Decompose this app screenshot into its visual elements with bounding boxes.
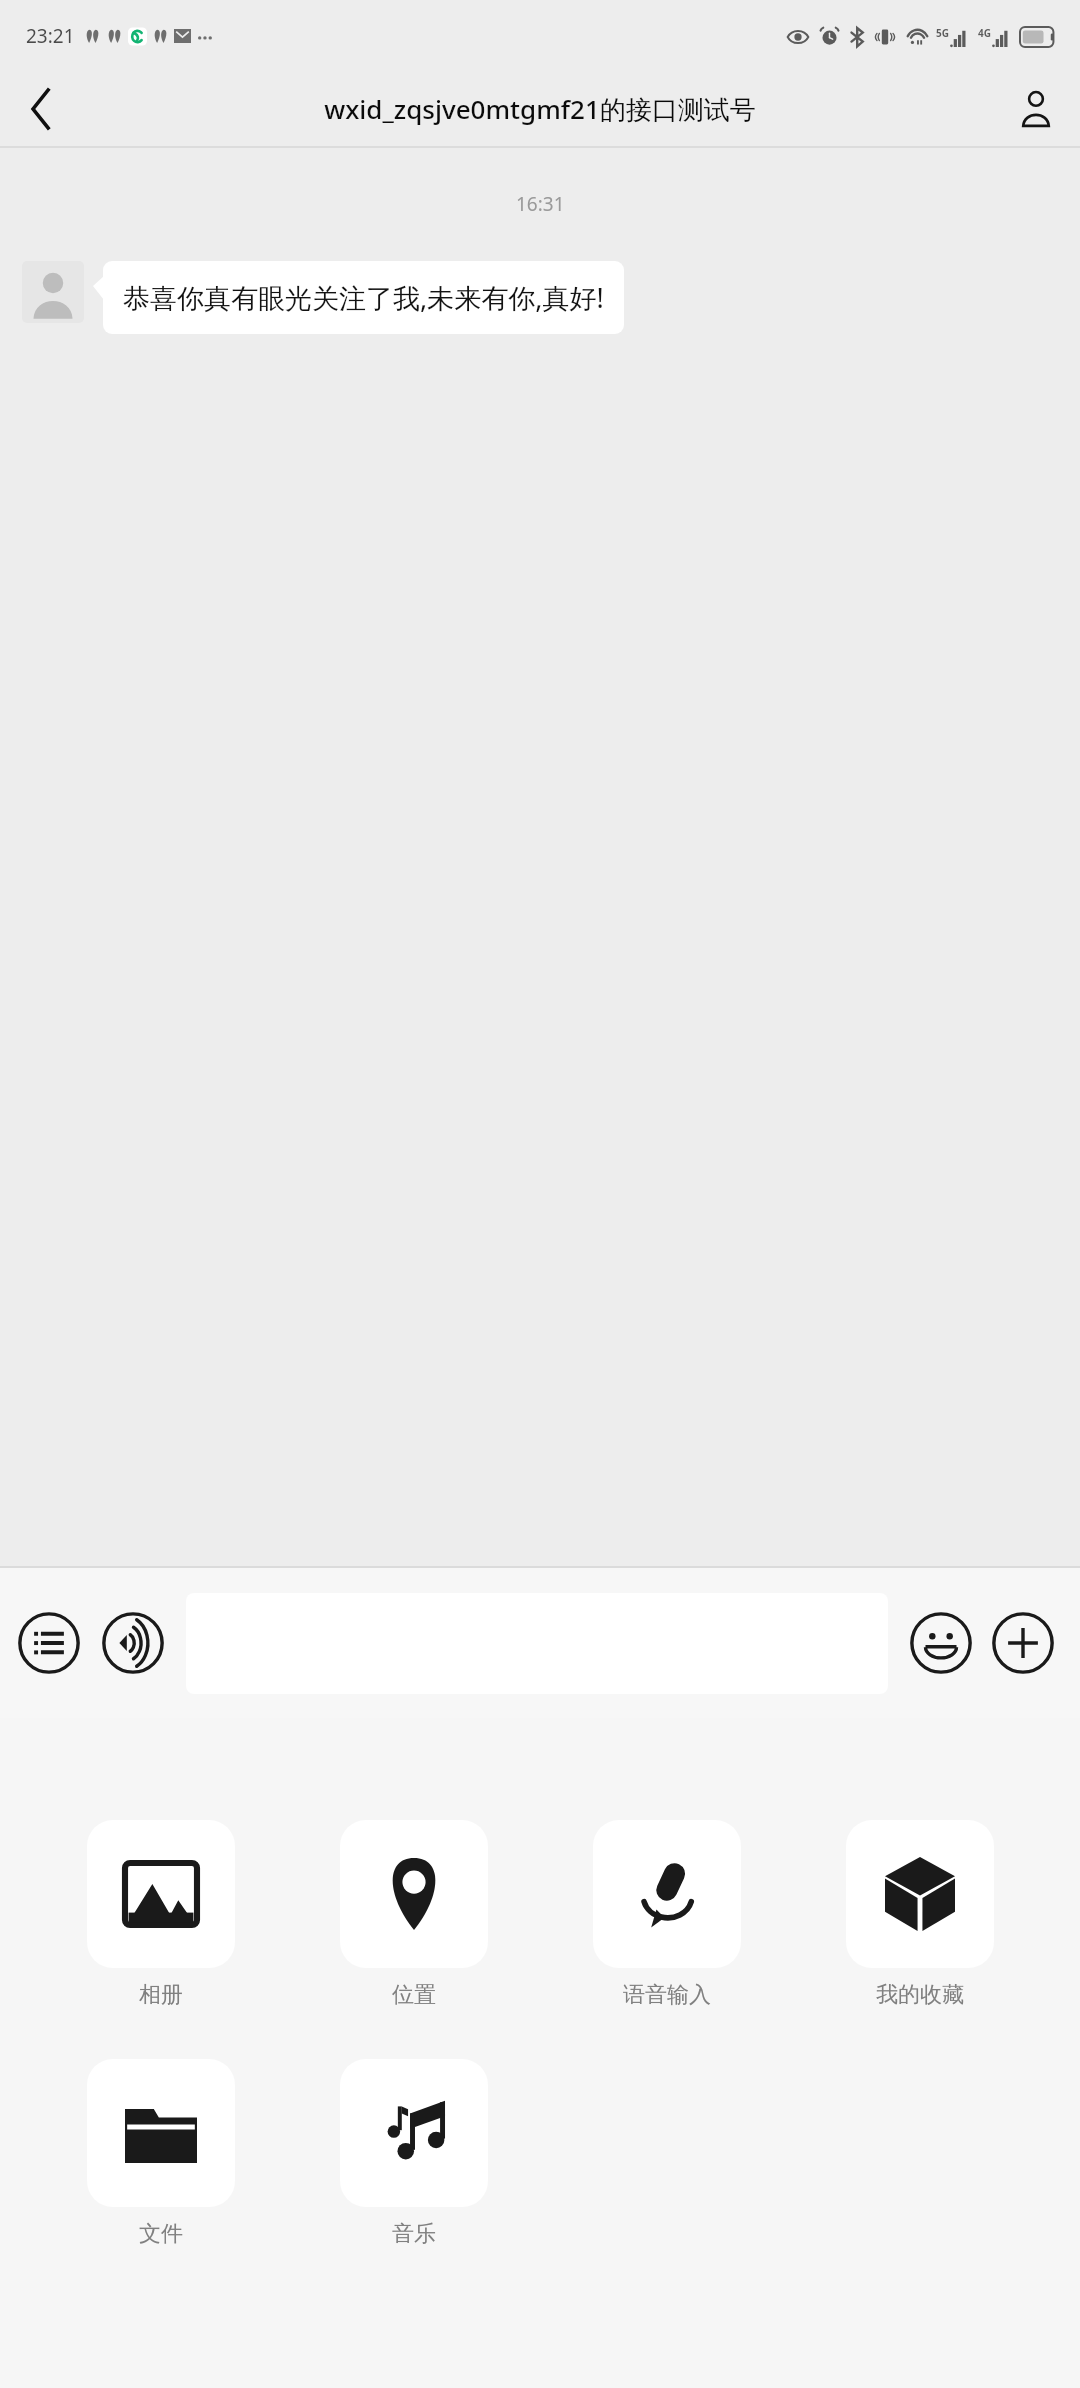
button[interactable]: Keyboard bbox=[12, 1606, 86, 1680]
button[interactable]: Contact info bbox=[1000, 73, 1072, 145]
button[interactable]: 相册 bbox=[34, 1820, 287, 2009]
staticText: 16:31 bbox=[516, 191, 565, 217]
staticText: 位置 bbox=[392, 1981, 436, 2009]
staticText: 语音输入 bbox=[623, 1981, 711, 2009]
button[interactable]: 位置 bbox=[287, 1820, 540, 2009]
staticText: 5G bbox=[936, 26, 949, 40]
staticText: 23:21 bbox=[26, 23, 75, 49]
button[interactable]: Voice message bbox=[96, 1606, 170, 1680]
button[interactable]: 我的收藏 bbox=[793, 1820, 1046, 2009]
staticText: 我的收藏 bbox=[876, 1981, 964, 2009]
staticText: 音乐 bbox=[392, 2220, 436, 2248]
button[interactable]: Back bbox=[6, 73, 78, 145]
staticText: wxid_zqsjve0mtgmf21的接口测试号 bbox=[324, 91, 756, 127]
staticText: 4G bbox=[978, 26, 991, 40]
staticText: 恭喜你真有眼光关注了我,未来有你,真好! bbox=[123, 279, 604, 316]
button[interactable]: 恭喜你真有眼光关注了我,未来有你,真好! bbox=[103, 261, 624, 334]
button[interactable]: 音乐 bbox=[287, 2059, 540, 2248]
button[interactable]: Avatar bbox=[22, 261, 84, 323]
button[interactable]: 文件 bbox=[34, 2059, 287, 2248]
staticText: 相册 bbox=[139, 1981, 183, 2009]
staticText: 文件 bbox=[139, 2220, 183, 2248]
button[interactable]: More bbox=[986, 1606, 1060, 1680]
button[interactable]: 语音输入 bbox=[540, 1820, 793, 2009]
button[interactable]: Emoji bbox=[904, 1606, 978, 1680]
